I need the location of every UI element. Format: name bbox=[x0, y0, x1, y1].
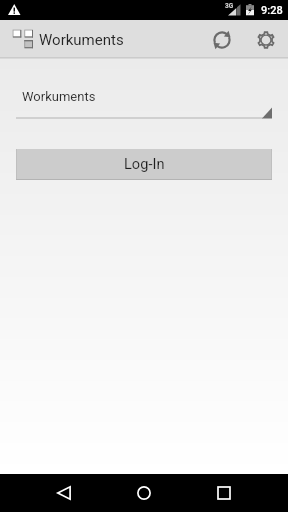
button[interactable]: Settings bbox=[244, 20, 288, 57]
staticText: Workuments bbox=[22, 89, 96, 104]
staticText: Workuments bbox=[39, 31, 124, 49]
button[interactable]: Refresh bbox=[199, 20, 244, 57]
button[interactable]: Home bbox=[104, 474, 184, 512]
button[interactable]: Back bbox=[24, 474, 104, 512]
button[interactable]: Recents bbox=[184, 474, 264, 512]
button[interactable]: Log-In bbox=[16, 149, 272, 180]
button[interactable]: Workuments bbox=[0, 88, 288, 130]
staticText: 9:28 bbox=[261, 4, 283, 17]
staticText: 3G bbox=[225, 2, 234, 10]
staticText: Log-In bbox=[124, 155, 165, 172]
